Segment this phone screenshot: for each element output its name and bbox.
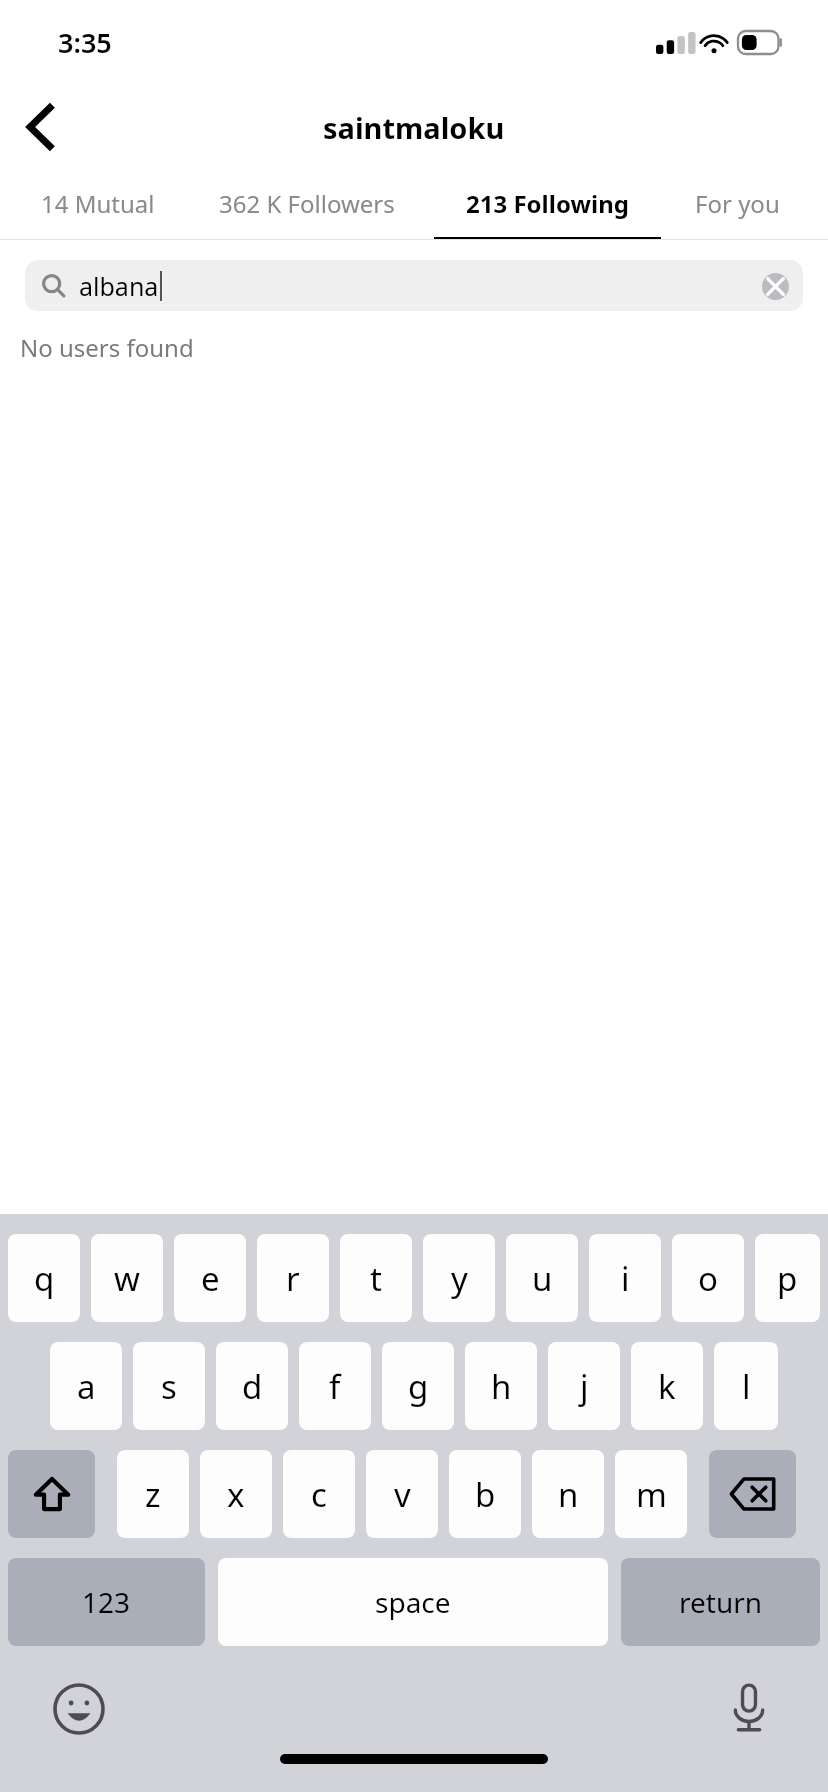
button[interactable]: u xyxy=(506,1234,578,1322)
staticText: s xyxy=(161,1364,177,1409)
staticText: d xyxy=(242,1364,263,1409)
button[interactable]: h xyxy=(465,1342,537,1430)
staticText: u xyxy=(532,1256,553,1301)
button[interactable]: 362 K Followers xyxy=(179,170,434,240)
button[interactable]: 213 Following xyxy=(434,170,661,240)
staticText: r xyxy=(286,1256,300,1301)
button[interactable]: c xyxy=(283,1450,355,1538)
staticText: b xyxy=(475,1472,496,1517)
button[interactable]: y xyxy=(423,1234,495,1322)
staticText: o xyxy=(698,1256,718,1301)
button[interactable]: z xyxy=(117,1450,189,1538)
button[interactable]: space xyxy=(218,1558,608,1646)
staticText: 3:35 xyxy=(58,24,112,61)
button[interactable]: v xyxy=(366,1450,438,1538)
staticText: i xyxy=(621,1256,630,1301)
staticText: t xyxy=(370,1256,382,1301)
button[interactable]: o xyxy=(672,1234,744,1322)
button[interactable]: n xyxy=(532,1450,604,1538)
staticText: albana xyxy=(79,269,159,303)
button[interactable]: w xyxy=(91,1234,163,1322)
button[interactable]: For you xyxy=(661,170,814,240)
button[interactable]: Clear text xyxy=(760,271,790,301)
staticText: saintmaloku xyxy=(323,108,505,147)
staticText: x xyxy=(227,1472,245,1517)
staticText: space xyxy=(375,1583,451,1621)
staticText: k xyxy=(658,1364,676,1409)
button[interactable]: f xyxy=(299,1342,371,1430)
button[interactable]: albana xyxy=(25,260,803,311)
button[interactable]: t xyxy=(340,1234,412,1322)
staticText: l xyxy=(742,1364,751,1409)
button[interactable]: Shift xyxy=(8,1450,95,1538)
button[interactable]: p xyxy=(755,1234,820,1322)
button[interactable]: Emoji xyxy=(48,1678,110,1740)
staticText: w xyxy=(114,1256,140,1301)
staticText: a xyxy=(77,1364,96,1409)
staticText: f xyxy=(329,1364,341,1409)
button[interactable]: e xyxy=(174,1234,246,1322)
button[interactable]: Dictation xyxy=(718,1678,780,1740)
staticText: m xyxy=(636,1472,667,1517)
button[interactable]: d xyxy=(216,1342,288,1430)
staticText: 362 K Followers xyxy=(219,187,395,220)
staticText: g xyxy=(408,1364,429,1409)
staticText: 14 Mutual xyxy=(41,187,155,220)
staticText: 123 xyxy=(82,1583,131,1621)
button[interactable]: return xyxy=(621,1558,820,1646)
button[interactable]: a xyxy=(50,1342,122,1430)
staticText: v xyxy=(394,1472,411,1517)
button[interactable]: s xyxy=(133,1342,205,1430)
button[interactable]: g xyxy=(382,1342,454,1430)
staticText: e xyxy=(201,1256,220,1301)
button[interactable]: Backspace xyxy=(709,1450,796,1538)
staticText: No users found xyxy=(20,331,194,364)
button[interactable]: k xyxy=(631,1342,703,1430)
staticText: y xyxy=(451,1256,468,1301)
staticText: c xyxy=(311,1472,327,1517)
button[interactable]: m xyxy=(615,1450,687,1538)
button[interactable]: Back xyxy=(10,97,70,157)
staticText: q xyxy=(34,1256,55,1301)
button[interactable]: b xyxy=(449,1450,521,1538)
staticText: 213 Following xyxy=(466,187,629,220)
button[interactable]: 123 xyxy=(8,1558,205,1646)
staticText: j xyxy=(580,1364,589,1409)
staticText: p xyxy=(777,1256,798,1301)
staticText: return xyxy=(679,1583,763,1621)
button[interactable]: r xyxy=(257,1234,329,1322)
button[interactable]: x xyxy=(200,1450,272,1538)
button[interactable]: j xyxy=(548,1342,620,1430)
button[interactable]: i xyxy=(589,1234,661,1322)
button[interactable]: q xyxy=(8,1234,80,1322)
staticText: For you xyxy=(695,187,780,220)
button[interactable]: 14 Mutual xyxy=(16,170,179,240)
staticText: z xyxy=(145,1472,161,1517)
button[interactable]: l xyxy=(714,1342,778,1430)
staticText: h xyxy=(491,1364,512,1409)
staticText: n xyxy=(558,1472,579,1517)
